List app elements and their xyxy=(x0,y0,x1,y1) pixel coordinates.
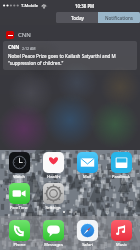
staticText: Safari xyxy=(82,242,93,247)
staticText: 2:12 AM xyxy=(22,46,36,51)
staticText: 10:38 PM xyxy=(75,3,95,9)
staticText: Nobel Peace Prize goes to Kailash Satyar… xyxy=(8,53,116,59)
staticText: Settings xyxy=(45,205,61,210)
button[interactable]: Watch xyxy=(4,152,34,179)
button[interactable]: CNN xyxy=(6,28,140,41)
staticText: CNN xyxy=(18,31,31,39)
staticText: Notifications xyxy=(105,15,134,21)
button[interactable]: FaceTime xyxy=(4,183,34,210)
staticText: CNN xyxy=(8,44,20,51)
button[interactable]: Safari xyxy=(72,220,102,247)
staticText: "suppression of children." xyxy=(8,60,64,66)
button[interactable]: Music xyxy=(106,220,136,247)
button[interactable]: Phone xyxy=(4,220,34,247)
button[interactable]: Today xyxy=(56,12,98,23)
button[interactable]: CNN xyxy=(3,41,137,70)
staticText: Watch xyxy=(13,174,25,179)
button[interactable]: Notifications xyxy=(98,12,140,23)
staticText: Messages xyxy=(44,242,63,247)
staticText: T-Mobile xyxy=(21,3,39,9)
button[interactable]: Passbook xyxy=(106,152,136,179)
staticText: Today xyxy=(71,15,84,21)
staticText: Phone xyxy=(13,242,26,247)
staticText: Health xyxy=(47,174,60,179)
button[interactable]: Messages xyxy=(38,220,68,247)
staticText: Passbook xyxy=(112,174,130,179)
button[interactable]: Health xyxy=(38,152,68,179)
button[interactable]: Mail xyxy=(72,152,102,179)
button[interactable]: Settings xyxy=(38,183,68,210)
staticText: FaceTime xyxy=(10,205,28,210)
staticText: Mail xyxy=(83,174,91,179)
staticText: Music xyxy=(116,242,127,247)
